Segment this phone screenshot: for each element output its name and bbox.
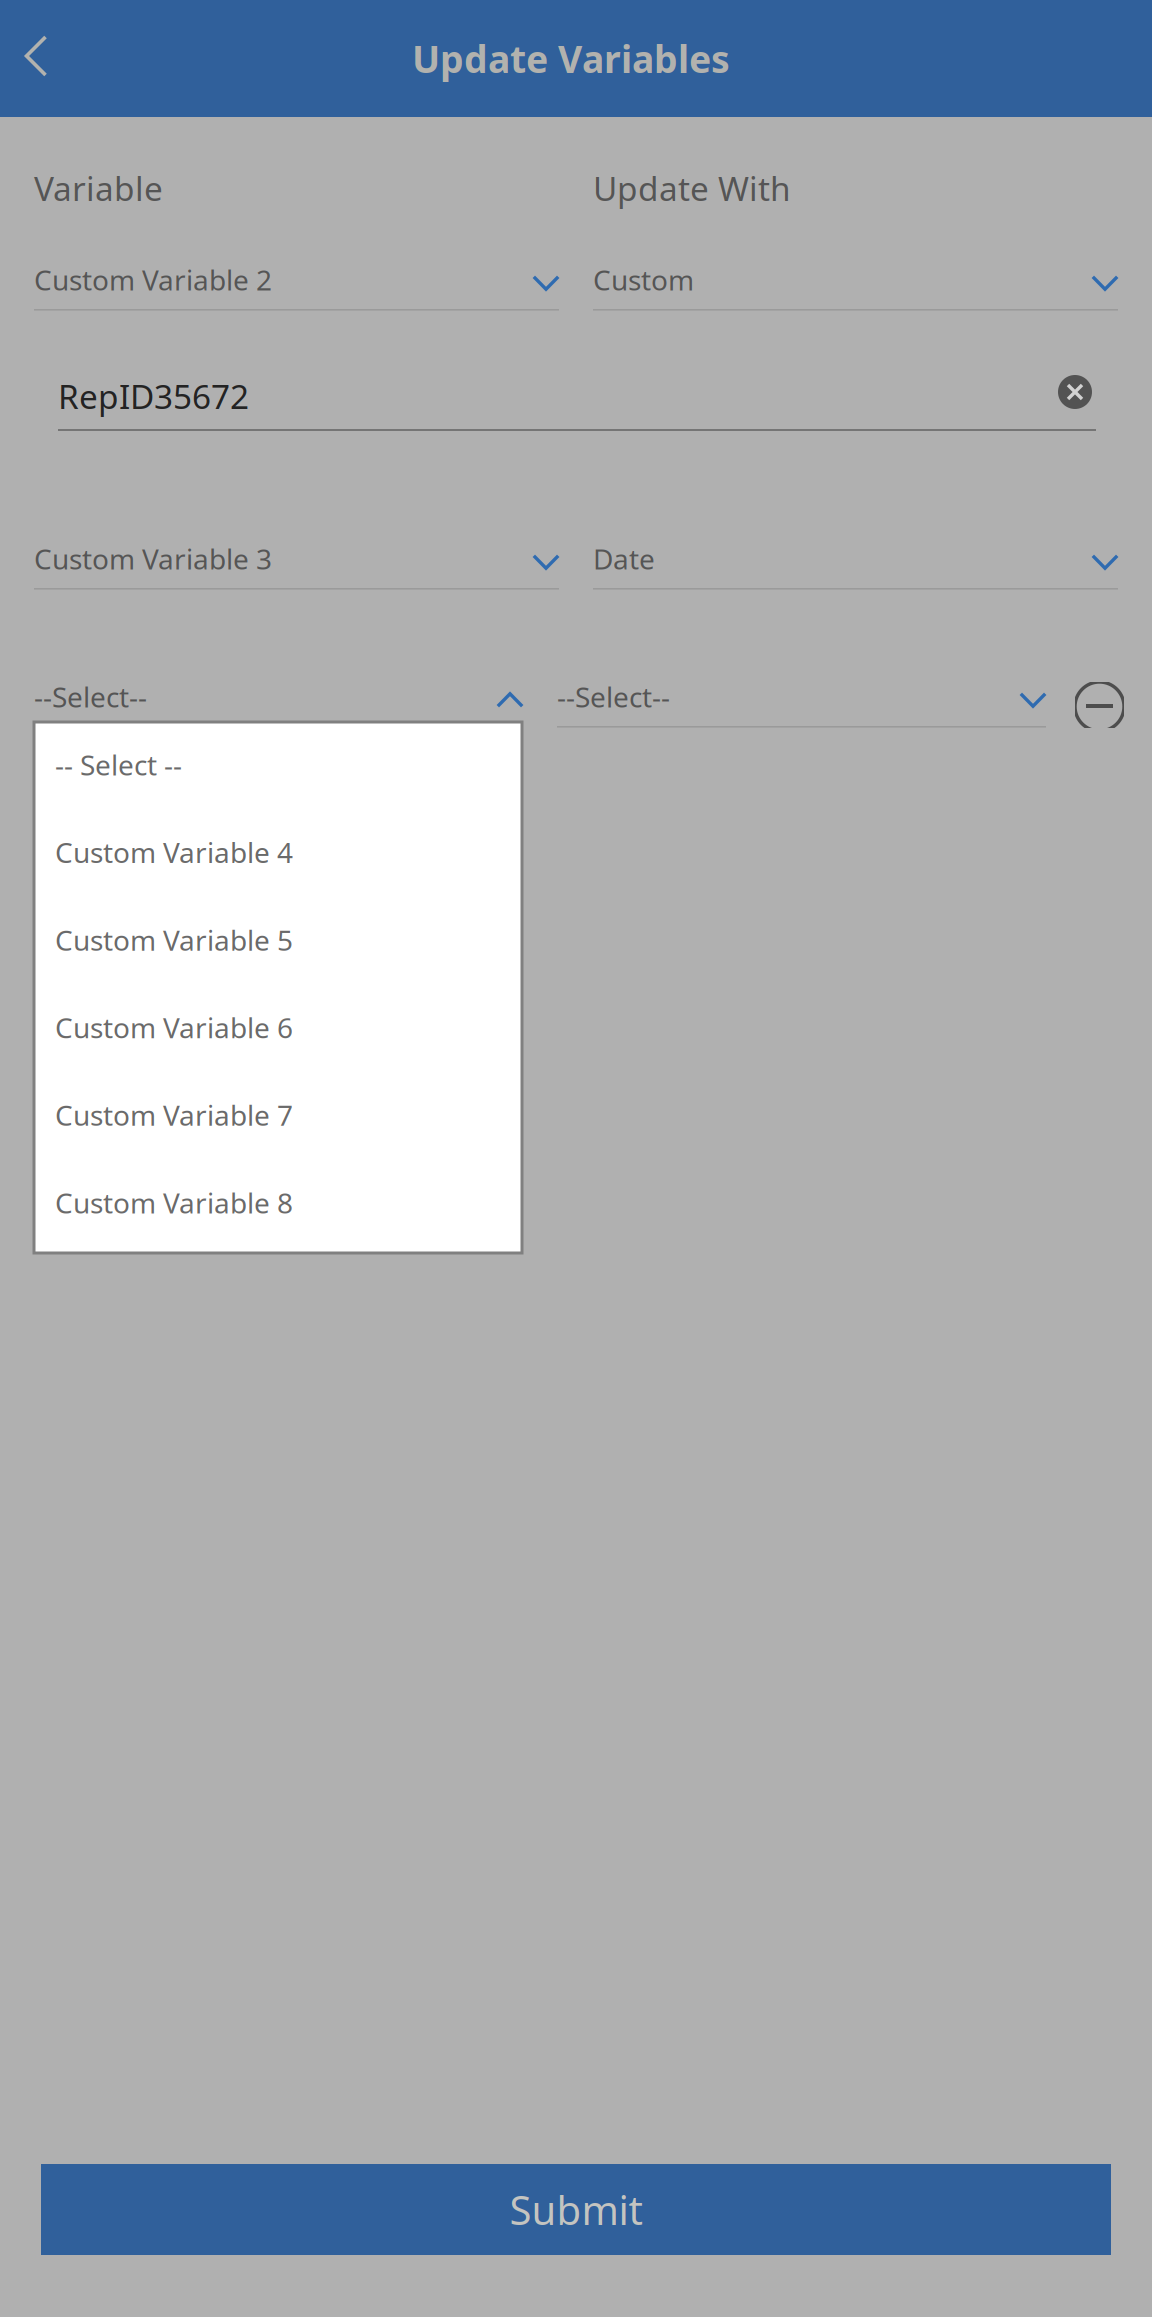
- button[interactable]: Custom Variable 4: [37, 813, 519, 900]
- button[interactable]: Submit: [41, 2164, 1111, 2255]
- staticText: --Select--: [34, 678, 147, 715]
- staticText: Custom Variable 5: [55, 921, 293, 958]
- staticText: Date: [593, 540, 655, 577]
- button[interactable]: --Select--: [34, 678, 523, 736]
- button[interactable]: Remove row: [1075, 682, 1124, 728]
- staticText: Custom Variable 2: [34, 261, 272, 298]
- staticText: Submit: [509, 2183, 642, 2236]
- staticText: Update With: [593, 166, 791, 210]
- staticText: Custom Variable 6: [55, 1009, 293, 1046]
- button[interactable]: Custom Variable 3: [34, 540, 559, 598]
- staticText: -- Select --: [55, 746, 182, 783]
- button[interactable]: --Select--: [557, 678, 1046, 736]
- button[interactable]: Date: [593, 540, 1118, 598]
- staticText: Custom Variable 8: [55, 1184, 293, 1221]
- staticText: Variable: [34, 166, 163, 210]
- staticText: Custom: [593, 261, 694, 298]
- button[interactable]: Custom Variable 6: [37, 988, 519, 1075]
- staticText: Custom Variable 3: [34, 540, 272, 577]
- button[interactable]: Clear text: [1058, 375, 1092, 409]
- button[interactable]: -- Select --: [37, 725, 519, 813]
- button[interactable]: Custom Variable 8: [37, 1163, 519, 1251]
- staticText: RepID35672: [58, 374, 249, 418]
- button[interactable]: Custom Variable 5: [37, 900, 519, 988]
- button[interactable]: Custom Variable 2: [34, 261, 559, 319]
- staticText: --Select--: [557, 678, 670, 715]
- staticText: Custom Variable 4: [55, 834, 293, 871]
- button[interactable]: Custom: [593, 261, 1118, 319]
- staticText: Update Variables: [412, 34, 730, 83]
- staticText: Custom Variable 7: [55, 1096, 293, 1134]
- button[interactable]: Custom Variable 7: [37, 1075, 519, 1163]
- button[interactable]: Back: [0, 12, 78, 100]
